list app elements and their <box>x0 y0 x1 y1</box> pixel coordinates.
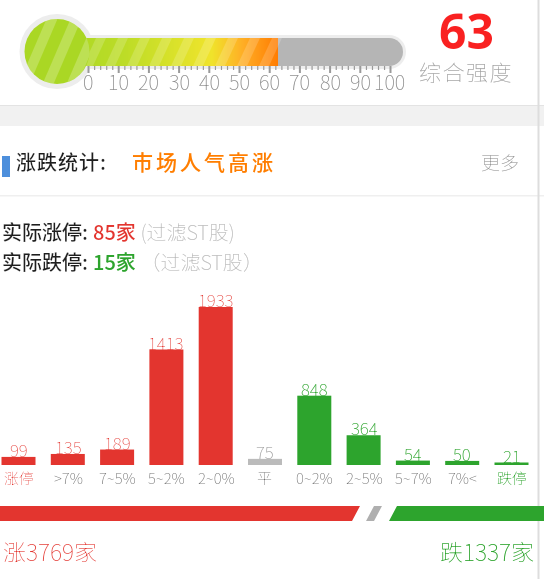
staticText: 2~0% <box>198 467 235 489</box>
staticText: 1413 <box>148 330 184 355</box>
staticText: 85家 <box>93 217 136 246</box>
staticText: （过滤ST股） <box>136 247 263 276</box>
staticText: 70 <box>289 67 310 96</box>
staticText: 实际涨停: <box>2 217 93 246</box>
staticText: (过滤ST股) <box>136 217 235 246</box>
staticText: 7%< <box>448 467 477 489</box>
staticText: 63 <box>439 0 494 63</box>
staticText: 市场人气高涨 <box>132 146 276 176</box>
staticText: 涨3769家 <box>3 534 97 567</box>
staticText: 135 <box>55 434 82 459</box>
staticText: 涨停 <box>4 467 35 489</box>
staticText: 50 <box>229 67 250 96</box>
staticText: 平 <box>257 467 273 489</box>
staticText: 综合强度 <box>419 55 514 87</box>
staticText: 90 <box>350 67 371 96</box>
staticText: 7~5% <box>99 467 136 489</box>
staticText: 涨跌统计: <box>16 147 107 176</box>
staticText: 189 <box>104 430 131 455</box>
staticText: >7% <box>54 467 83 489</box>
staticText: 跌1337家 <box>440 534 534 567</box>
staticText: 15家 <box>93 247 136 276</box>
staticText: 54 <box>404 441 422 466</box>
staticText: 实际跌停: <box>2 247 93 276</box>
staticText: 30 <box>169 67 190 96</box>
staticText: 0~2% <box>296 467 333 489</box>
staticText: 5~7% <box>395 467 432 489</box>
staticText: 848 <box>301 376 328 401</box>
staticText: 100 <box>374 67 406 96</box>
staticText: 364 <box>351 415 378 440</box>
button[interactable]: 涨跌统计: <box>0 143 544 177</box>
staticText: 21 <box>503 443 521 468</box>
staticText: 60 <box>259 67 280 96</box>
staticText: 80 <box>320 67 341 96</box>
staticText: 更多 <box>481 148 520 176</box>
staticText: 1933 <box>198 287 234 312</box>
staticText: 10 <box>108 67 129 96</box>
staticText: 0 <box>83 67 94 96</box>
staticText: 5~2% <box>148 467 185 489</box>
staticText: 40 <box>199 67 220 96</box>
staticText: 跌停 <box>497 467 528 489</box>
staticText: 75 <box>256 439 274 464</box>
staticText: 20 <box>138 67 159 96</box>
staticText: 2~5% <box>346 467 383 489</box>
staticText: 50 <box>453 441 471 466</box>
staticText: 99 <box>10 437 28 462</box>
